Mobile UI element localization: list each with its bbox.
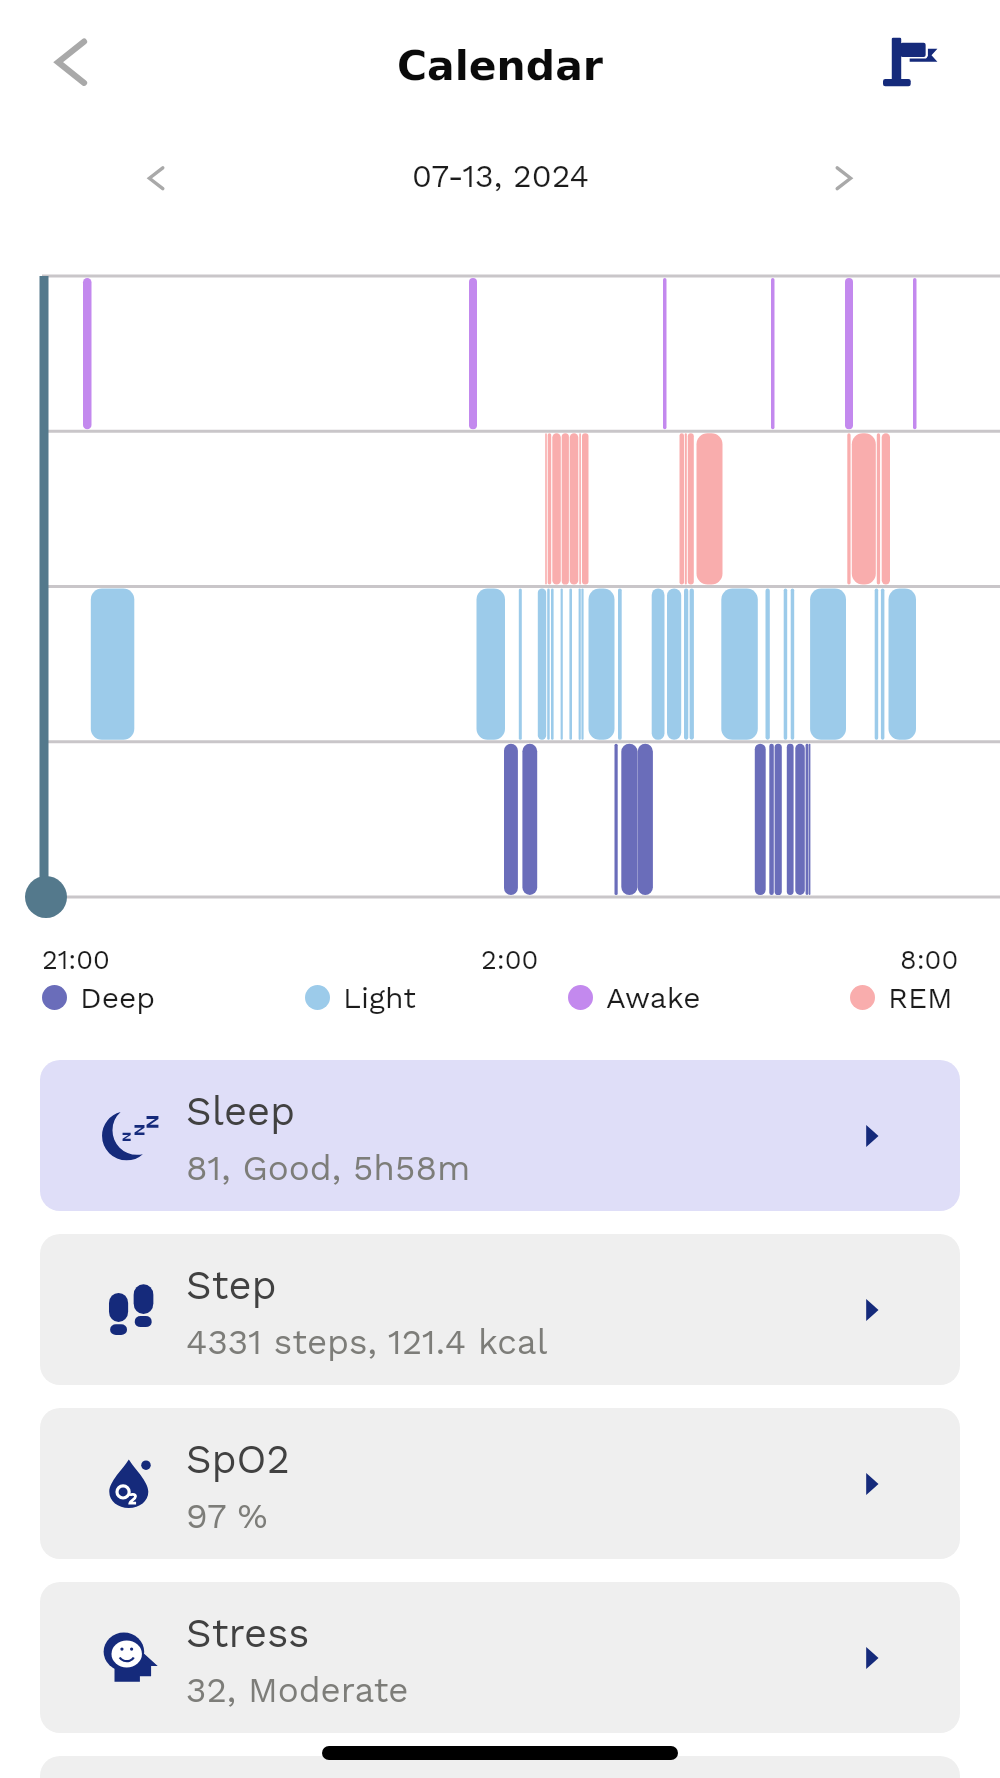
button[interactable]: Sleep xyxy=(40,1060,960,1211)
staticText: 32, Moderate xyxy=(186,1669,409,1710)
staticText: Light xyxy=(343,980,416,1015)
staticText: Stress xyxy=(186,1610,310,1657)
button[interactable]: Previous day xyxy=(126,148,188,210)
staticText: Sleep xyxy=(186,1088,296,1135)
staticText: REM xyxy=(888,980,953,1015)
staticText: Deep xyxy=(80,980,156,1015)
staticText: 97 % xyxy=(186,1495,268,1536)
staticText: 8:00 xyxy=(900,944,959,976)
staticText: 21:00 xyxy=(42,944,110,976)
staticText: 81, Good, 5h58m xyxy=(186,1147,471,1188)
button[interactable]: Stress xyxy=(40,1582,960,1733)
button[interactable]: Back xyxy=(34,26,108,100)
button[interactable]: SpO2 xyxy=(40,1408,960,1559)
staticText: Step xyxy=(186,1262,277,1309)
button[interactable]: Goal xyxy=(878,25,954,101)
staticText: Calendar xyxy=(397,42,604,90)
staticText: 4331 steps, 121.4 kcal xyxy=(186,1321,548,1362)
staticText: Awake xyxy=(606,980,701,1015)
staticText: SpO2 xyxy=(186,1436,290,1483)
staticText: 2:00 xyxy=(481,944,539,976)
button[interactable]: Next day xyxy=(812,148,874,210)
button[interactable] xyxy=(40,1756,960,1778)
staticText: 07-13, 2024 xyxy=(412,157,589,195)
button[interactable]: Step xyxy=(40,1234,960,1385)
